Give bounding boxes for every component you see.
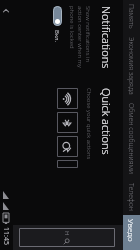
button[interactable]: Вкл. [53, 6, 62, 43]
button[interactable]: Quick action [57, 160, 78, 168]
staticText: Экономия заряда [126, 37, 136, 95]
button[interactable]: Телефон [123, 179, 140, 215]
staticText: Уведомления и действия [126, 219, 137, 246]
button[interactable]: Back [1, 5, 12, 16]
staticText: Show notifications in action center when… [68, 6, 92, 76]
button[interactable]: Уведомления и действия [123, 215, 140, 250]
button[interactable]: Wi-Fi quick action [57, 88, 78, 109]
button[interactable]: Экономия заряда [123, 33, 140, 99]
button[interactable]: Память [123, 0, 140, 33]
button[interactable]: Flashlight quick action [57, 136, 78, 157]
staticText: Обмен сообщениями [126, 103, 136, 175]
staticText: Choose your quick actions [85, 88, 93, 160]
staticText: 11:45 [1, 227, 11, 245]
staticText: Память [126, 4, 136, 29]
button[interactable]: Search settings [19, 228, 115, 247]
staticText: Quick actions [99, 88, 114, 155]
staticText: Найти параметр [63, 231, 71, 234]
staticText: Notifications [99, 6, 114, 69]
button[interactable]: Bluetooth quick action [57, 112, 78, 133]
staticText: Телефон [126, 183, 136, 211]
staticText: Вкл. [53, 30, 61, 43]
button[interactable]: Обмен сообщениями [123, 99, 140, 179]
